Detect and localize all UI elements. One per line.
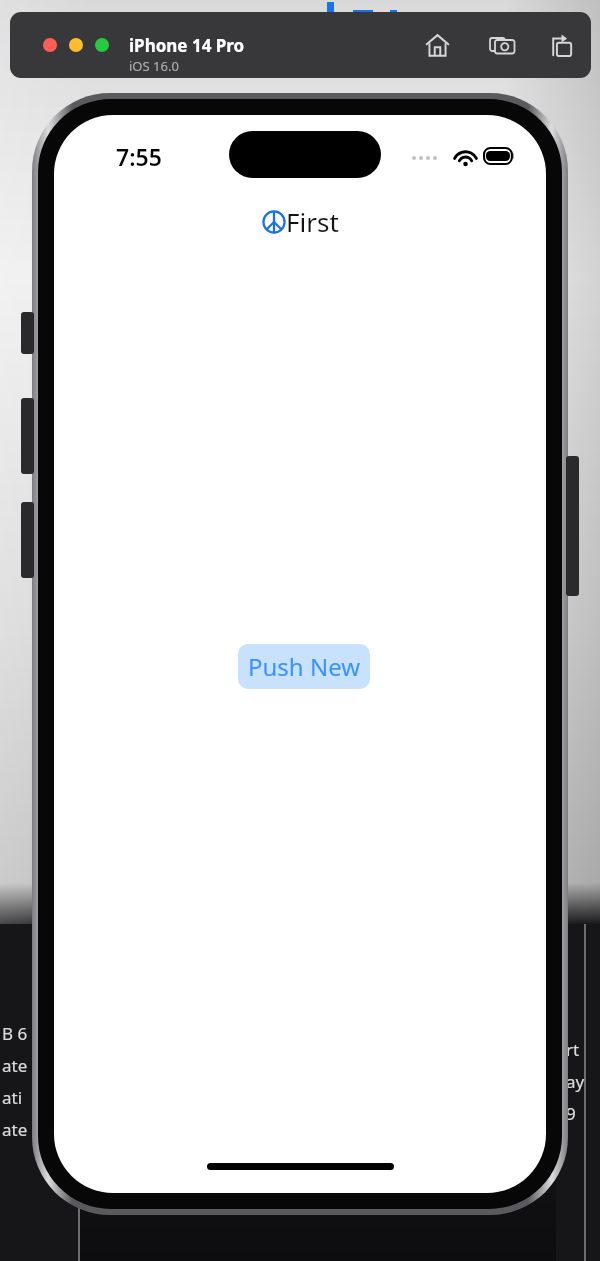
staticText: ay [566,1070,585,1093]
staticText: 9 [566,1102,576,1125]
button[interactable]: Close window [43,38,57,52]
button[interactable]: Screenshot [480,23,524,67]
staticText: First [286,204,339,239]
staticText: B 6 [2,1022,28,1045]
staticText: ate [2,1118,28,1141]
staticText: rt [566,1038,580,1061]
button[interactable]: Push New [238,644,370,689]
button[interactable]: Rotate [539,23,583,67]
staticText: 7:55 [116,141,162,172]
staticText: ate [2,1054,28,1077]
button[interactable]: Minimise window [69,38,83,52]
staticText: iPhone 14 Pro [129,34,245,57]
button[interactable]: Home [415,23,459,67]
button[interactable]: Zoom window [95,38,109,52]
staticText: iOS 16.0 [129,57,179,75]
staticText: ati [2,1086,23,1109]
staticText: Push New [248,650,361,683]
